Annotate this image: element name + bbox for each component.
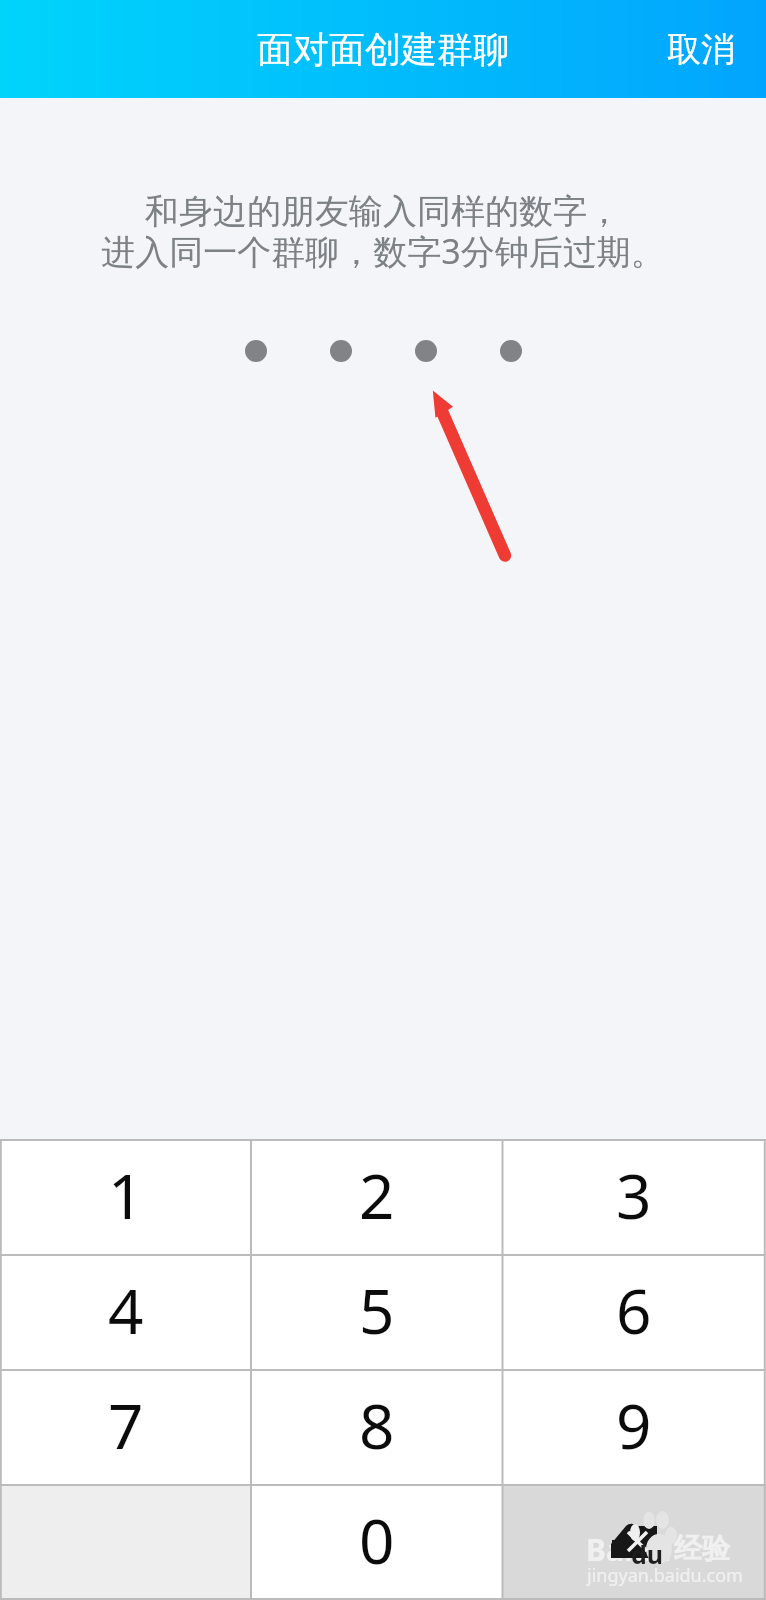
button[interactable]: 1: [0, 1140, 251, 1255]
staticText: jingyan.baidu.com: [587, 1563, 743, 1588]
staticText: 8: [359, 1383, 395, 1467]
button[interactable]: 2: [251, 1140, 502, 1255]
button[interactable]: 取消: [636, 8, 766, 91]
staticText: 5: [359, 1268, 395, 1352]
staticText: 2: [359, 1153, 395, 1237]
staticText: 经验: [674, 1531, 730, 1566]
staticText: Baidu: [586, 1529, 672, 1570]
staticText: 6: [616, 1268, 652, 1352]
staticText: 4: [108, 1268, 144, 1352]
button[interactable]: 4: [0, 1255, 251, 1370]
staticText: 1: [108, 1153, 144, 1237]
staticText: 3: [616, 1153, 652, 1237]
staticText: 7: [108, 1383, 144, 1467]
button[interactable]: 5: [251, 1255, 502, 1370]
button[interactable]: Four digit code field: [245, 340, 522, 362]
button[interactable]: 0: [251, 1485, 502, 1600]
staticText: 取消: [667, 28, 735, 71]
button[interactable]: 9: [502, 1370, 766, 1485]
staticText: 9: [616, 1383, 652, 1467]
staticText: 面对面创建群聊: [257, 27, 509, 72]
button[interactable]: 3: [502, 1140, 766, 1255]
button[interactable]: Blank key: [0, 1485, 251, 1600]
button[interactable]: 8: [251, 1370, 502, 1485]
button[interactable]: 7: [0, 1370, 251, 1485]
staticText: 0: [359, 1498, 395, 1582]
staticText: du: [631, 1537, 664, 1571]
staticText: 和身边的朋友输入同样的数字， 进入同一个群聊，数字3分钟后过期。: [0, 190, 766, 274]
button[interactable]: 6: [502, 1255, 766, 1370]
button[interactable]: Delete: [502, 1485, 766, 1600]
